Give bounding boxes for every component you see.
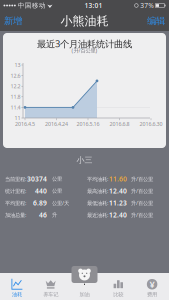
staticText: 46 [39,211,47,219]
staticText: 13 [14,61,20,69]
button[interactable]: 加油 [68,273,101,300]
staticText: 加油总量: [5,211,26,219]
staticText: 中国移动 [16,1,46,10]
staticText: 11.23 [109,199,127,207]
staticText: 升/百公里 [131,187,153,195]
staticText: 2016.6.8 [109,120,129,128]
staticText: 2016.4.5 [15,120,35,128]
button[interactable]: 加油 [71,266,97,283]
staticText: 12.40 [109,187,127,195]
button[interactable]: 油耗 [0,273,34,300]
button[interactable]: 新增 [0,12,26,30]
staticText: 11.60 [109,175,127,183]
staticText: 最近3个月油耗统计曲线 [37,37,132,50]
staticText: 2016.4.24 [45,120,68,128]
staticText: 11 [14,114,20,122]
staticText: 最近油耗: [87,211,108,219]
staticText: 升/百公里 [131,211,153,219]
staticText: 油耗 [12,291,22,298]
staticText: 12.40 [109,211,127,219]
staticText: 6.89 [33,199,47,207]
staticText: 小三 [76,155,92,165]
staticText: 当前里程: [5,175,26,183]
staticText: ¥ [150,278,155,290]
staticText: 统计里程: [5,187,26,195]
button[interactable]: ¥ [135,273,169,300]
staticText: 平均油耗: [87,175,108,183]
staticText: 编辑 [147,15,165,27]
staticText: 公里 [52,176,62,182]
staticText: 养车记 [43,291,58,298]
staticText: 30374 [27,175,47,183]
staticText: 11.8 [10,93,20,100]
staticText: 440 [35,187,47,195]
staticText: 最低油耗: [87,199,108,207]
staticText: 比较 [113,291,123,298]
button[interactable]: 养车记 [34,273,68,300]
staticText: 升/百公里 [131,175,153,183]
staticText: 升/百公里 [131,199,153,207]
staticText: 12.6 [10,72,20,79]
staticText: 13:01 [84,1,102,10]
staticText: 新增 [4,15,22,27]
staticText: 2016.6.30 [139,120,162,128]
staticText: 11.4 [10,104,20,111]
staticText: 公里 [52,188,62,194]
button[interactable]: 编辑 [143,12,169,30]
staticText: 2016.5.16 [76,120,99,128]
staticText: (升/百公里) [71,47,97,54]
staticText: 公里/天 [52,199,69,207]
staticText: 小熊油耗 [60,14,108,28]
staticText: 升 [52,212,57,218]
staticText: 12.2 [10,83,20,90]
staticText: 37% [138,1,154,10]
staticText: 平均里程: [5,199,26,207]
staticText: 最高油耗: [87,187,108,195]
button[interactable]: 比较 [101,273,135,300]
staticText: 费用 [147,291,157,298]
staticText: 加油 [79,291,89,298]
